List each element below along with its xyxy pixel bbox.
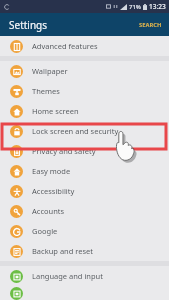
staticText: 71% (129, 3, 141, 11)
button[interactable]: Advanced features (0, 36, 169, 56)
button[interactable]: Privacy and safety (0, 141, 169, 161)
button[interactable]: Language and input (0, 266, 169, 286)
staticText: Settings (9, 18, 48, 32)
button[interactable]: Lock screen and security (0, 121, 169, 141)
staticText: Language and input (32, 271, 103, 281)
button[interactable]: Accessibility (0, 181, 169, 201)
staticText: Lock screen and security (32, 126, 119, 136)
staticText: Home screen (32, 106, 79, 116)
button[interactable]: Easy mode (0, 161, 169, 181)
button[interactable]: SEARCH (132, 16, 169, 34)
staticText: Wallpaper (32, 66, 68, 76)
staticText: SEARCH (139, 21, 162, 29)
button[interactable]: Wallpaper (0, 61, 169, 81)
staticText: Easy mode (32, 166, 71, 176)
staticText: Accounts (32, 206, 65, 216)
staticText: Google (32, 226, 58, 236)
button[interactable]: Backup and reset (0, 241, 169, 261)
button[interactable]: Themes (0, 81, 169, 101)
staticText: 13:23 (149, 2, 166, 11)
staticText: Advanced features (32, 41, 98, 51)
staticText: Accessibility (32, 186, 75, 196)
staticText: Privacy and safety (32, 146, 96, 156)
staticText: Themes (32, 86, 60, 96)
button[interactable] (0, 286, 169, 300)
button[interactable]: Google (0, 221, 169, 241)
button[interactable]: Accounts (0, 201, 169, 221)
staticText: Backup and reset (32, 246, 93, 256)
button[interactable]: Home screen (0, 101, 169, 121)
other: Pointer (111, 130, 137, 162)
